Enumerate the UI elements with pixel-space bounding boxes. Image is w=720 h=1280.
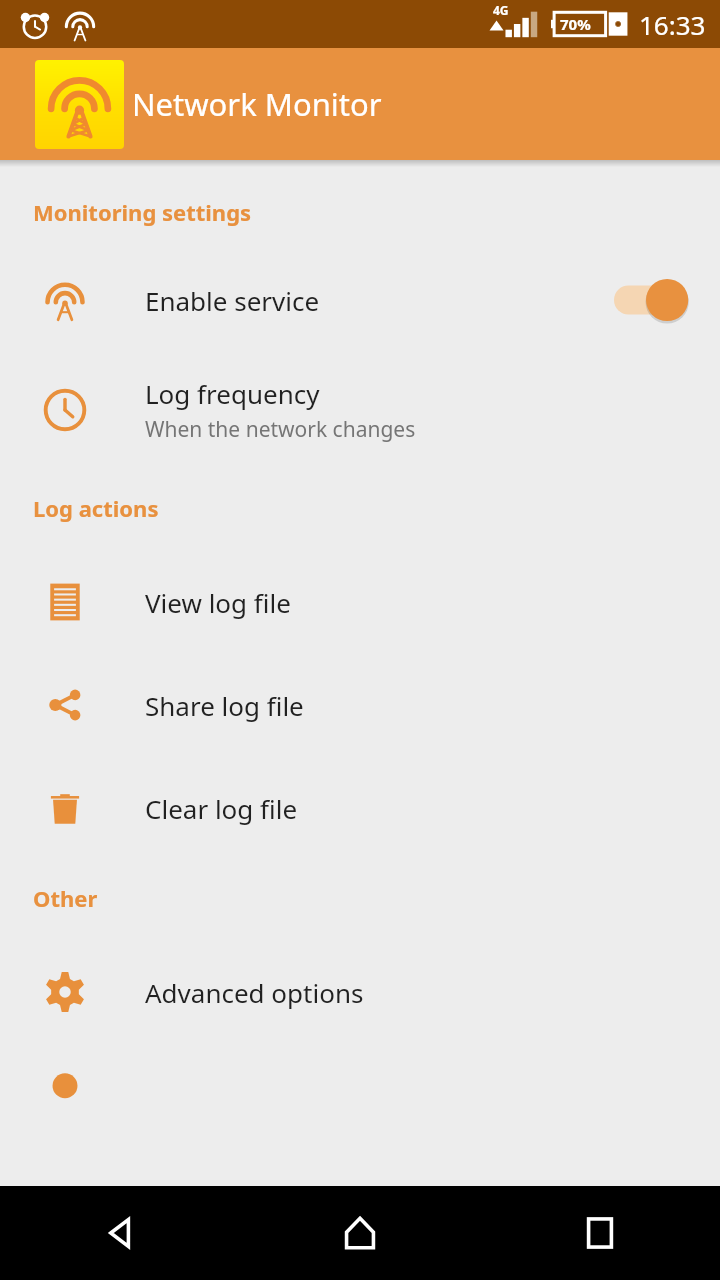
button[interactable]: Home <box>240 1186 480 1280</box>
button[interactable]: Back <box>0 1186 240 1280</box>
staticText: Log frequency <box>145 376 320 411</box>
staticText: Share log file <box>145 688 304 723</box>
button[interactable]: Clear log file <box>0 777 720 839</box>
button[interactable]: View log file <box>0 571 720 633</box>
button[interactable]: Log frequency <box>0 371 720 449</box>
staticText: Advanced options <box>145 975 364 1010</box>
staticText: Monitoring settings <box>33 197 252 227</box>
button[interactable]: Recent apps <box>480 1186 720 1280</box>
button[interactable]: Share log file <box>0 674 720 736</box>
button[interactable]: App icon <box>35 60 124 149</box>
staticText: Other <box>33 883 98 913</box>
staticText: View log file <box>145 585 291 620</box>
staticText: Enable service <box>145 283 320 318</box>
staticText: 16:33 <box>639 7 706 42</box>
staticText: 4G <box>493 2 509 18</box>
staticText: Log actions <box>33 493 159 523</box>
staticText: Network Monitor <box>132 83 382 125</box>
staticText: 70% <box>560 14 591 34</box>
staticText: Clear log file <box>145 791 298 826</box>
button[interactable]: Enable service <box>0 269 720 331</box>
button[interactable]: Advanced options <box>0 961 720 1023</box>
staticText: When the network changes <box>145 415 416 444</box>
button[interactable]: Enable service toggle <box>614 276 690 324</box>
